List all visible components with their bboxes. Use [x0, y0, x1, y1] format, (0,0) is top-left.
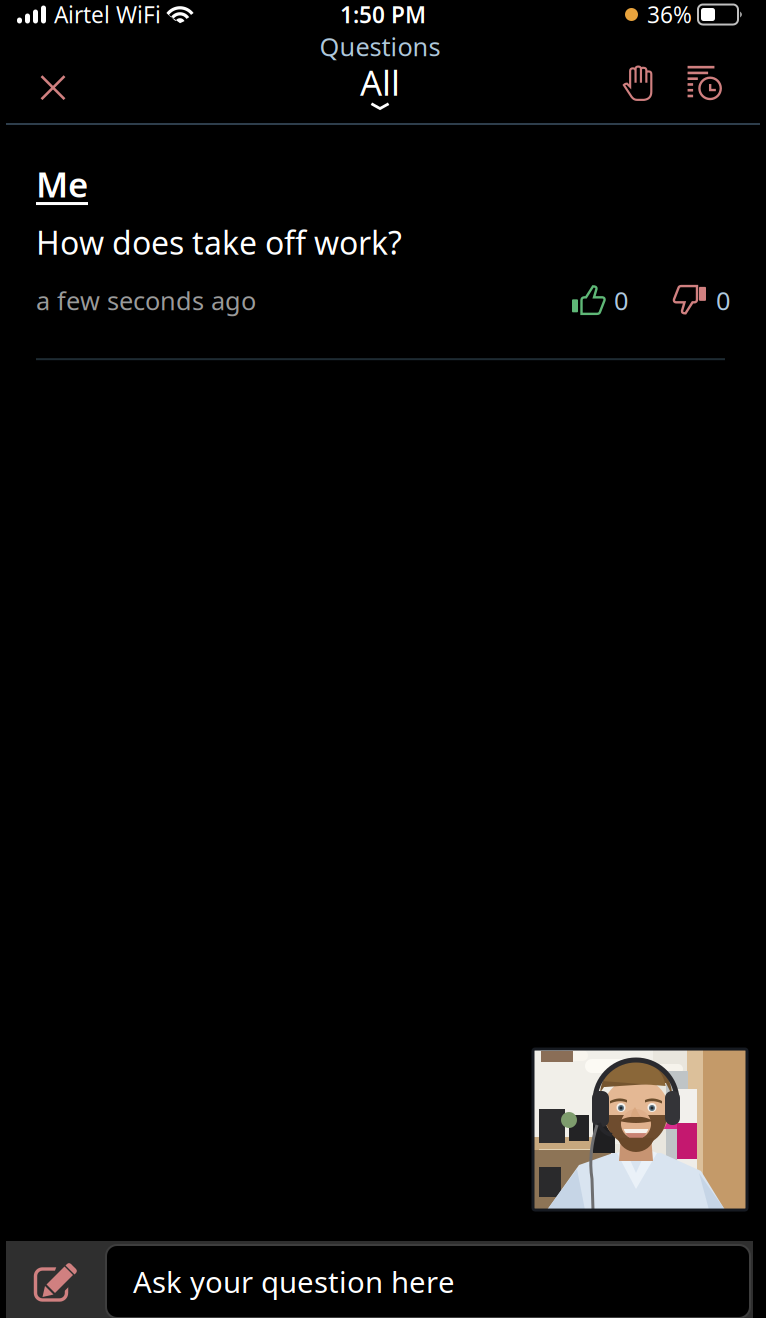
button[interactable]: Ask your question here — [106, 1241, 753, 1318]
staticText: 36% — [647, 0, 692, 29]
staticText: a few seconds ago — [36, 283, 256, 317]
button[interactable]: Upvote — [572, 279, 628, 321]
staticText: 0 — [614, 283, 628, 317]
staticText: 0 — [716, 283, 730, 317]
staticText: Ask your question here — [133, 1262, 455, 1301]
staticText: Questions — [319, 30, 440, 63]
staticText: How does take off work? — [36, 221, 402, 263]
staticText: Airtel WiFi — [54, 0, 161, 29]
staticText: All — [360, 59, 400, 105]
button[interactable]: Downvote — [628, 279, 730, 321]
button[interactable]: Close — [15, 55, 91, 121]
staticText: 1:50 PM — [340, 0, 426, 29]
button[interactable]: Question history — [670, 54, 726, 114]
staticText: Me — [36, 161, 88, 207]
button[interactable]: Compose question — [6, 1241, 106, 1318]
button[interactable]: Raise hand — [614, 54, 670, 114]
